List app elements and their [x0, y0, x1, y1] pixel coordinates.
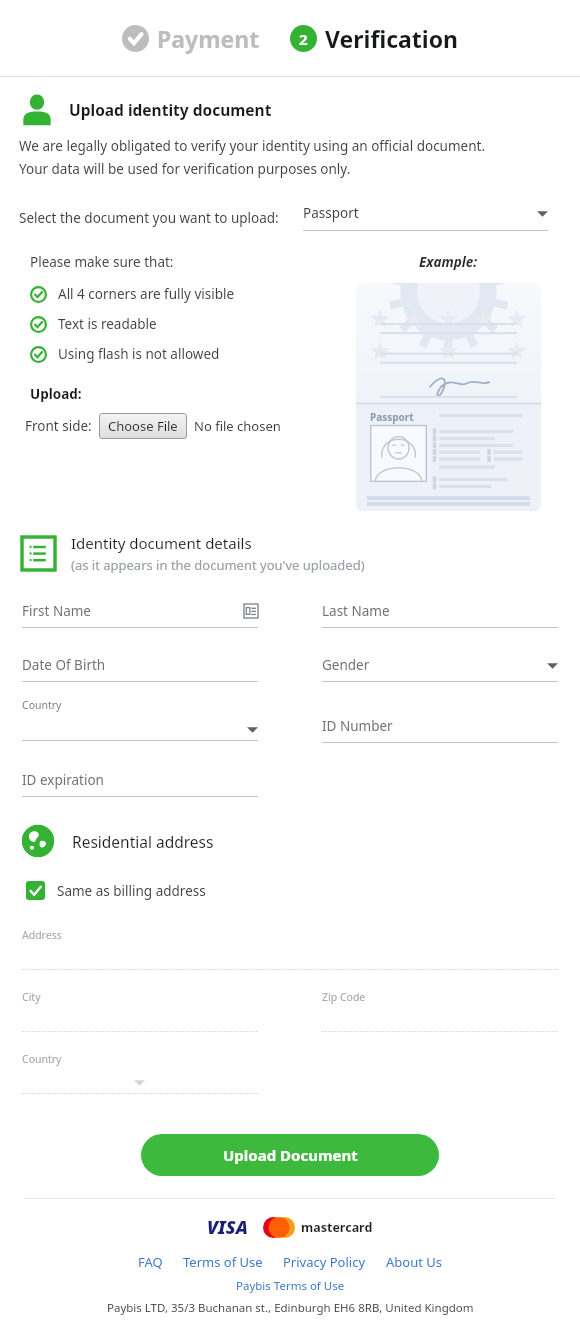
staticText: Your data will be used for verification …	[19, 160, 351, 178]
staticText: ID expiration	[22, 771, 104, 789]
button[interactable]: Upload Document	[141, 1134, 439, 1176]
button[interactable]: ID Number	[322, 717, 558, 743]
button[interactable]: Text is readable	[30, 315, 157, 333]
button[interactable]: Terms of Use	[183, 1253, 263, 1271]
staticText: FAQ	[138, 1253, 163, 1271]
staticText: Privacy Policy	[283, 1253, 366, 1271]
staticText: Address	[22, 928, 62, 942]
staticText: Select the document you want to upload:	[19, 209, 279, 227]
staticText: Passport	[303, 204, 359, 222]
staticText: Date Of Birth	[22, 656, 106, 674]
staticText: VISA	[207, 1215, 248, 1240]
button[interactable]: Paybis Terms of Use	[236, 1278, 345, 1294]
staticText: Passport	[370, 410, 414, 424]
button[interactable]: Gender	[322, 656, 558, 682]
staticText: Text is readable	[58, 315, 157, 333]
staticText: First Name	[22, 602, 91, 620]
button[interactable]: Address	[22, 928, 558, 970]
button[interactable]: Payment	[120, 23, 262, 54]
button[interactable]: All 4 corners are fully visible	[30, 285, 235, 303]
staticText: All 4 corners are fully visible	[58, 285, 235, 303]
button[interactable]: Same as billing address	[26, 881, 206, 900]
staticText: Last Name	[322, 602, 390, 620]
staticText: City	[22, 990, 41, 1004]
button[interactable]: Date Of Birth	[22, 656, 258, 682]
button[interactable]: Document type	[303, 204, 548, 231]
staticText: Residential address	[72, 831, 214, 852]
staticText: mastercard	[301, 1219, 373, 1236]
staticText: Upload Document	[223, 1145, 358, 1165]
staticText: Terms of Use	[183, 1253, 263, 1271]
staticText: Paybis Terms of Use	[236, 1278, 345, 1294]
staticText: Upload:	[30, 385, 82, 403]
button[interactable]: Country	[22, 1052, 258, 1094]
button[interactable]: Privacy Policy	[283, 1253, 366, 1271]
staticText: Front side:	[25, 417, 92, 435]
button[interactable]: FAQ	[138, 1253, 163, 1271]
staticText: Upload identity document	[69, 99, 272, 120]
button[interactable]: City	[22, 990, 258, 1032]
button[interactable]: Using flash is not allowed	[30, 345, 220, 363]
staticText: Please make sure that:	[30, 253, 174, 271]
button[interactable]: About Us	[386, 1253, 443, 1271]
staticText: Using flash is not allowed	[58, 345, 220, 363]
staticText: Verification	[325, 23, 458, 54]
staticText: About Us	[386, 1253, 443, 1271]
button[interactable]: Last Name	[322, 602, 558, 628]
staticText: We are legally obligated to verify your …	[19, 137, 486, 155]
staticText: Paybis LTD, 35/3 Buchanan st., Edinburgh…	[107, 1300, 474, 1316]
staticText: Country	[22, 1052, 62, 1066]
button[interactable]: Country	[22, 698, 258, 741]
staticText: Zip Code	[322, 990, 366, 1004]
button[interactable]: 2	[288, 23, 460, 54]
button[interactable]: Choose File	[99, 413, 187, 439]
staticText: Example:	[419, 253, 478, 271]
staticText: Country	[22, 698, 62, 712]
button[interactable]: ID expiration	[22, 771, 258, 797]
staticText: Payment	[157, 23, 260, 54]
staticText: 2	[299, 29, 308, 49]
staticText: (as it appears in the document you've up…	[71, 556, 365, 574]
button[interactable]: Zip Code	[322, 990, 558, 1032]
staticText: No file chosen	[194, 417, 281, 435]
staticText: Same as billing address	[57, 882, 206, 900]
button[interactable]: First Name	[22, 602, 258, 628]
staticText: Choose File	[108, 417, 178, 435]
staticText: Gender	[322, 656, 370, 674]
staticText: ID Number	[322, 717, 393, 735]
staticText: Identity document details	[71, 533, 252, 553]
